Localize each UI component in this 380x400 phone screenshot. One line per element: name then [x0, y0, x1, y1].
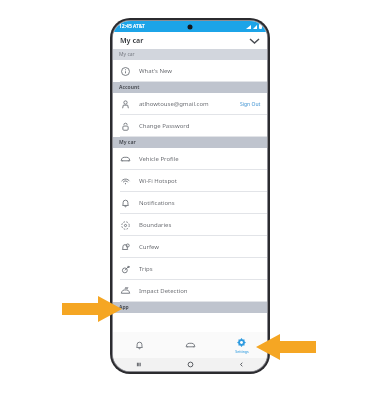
button[interactable]: atlhowtouse@gmail.com: [113, 93, 267, 115]
button[interactable]: Notifications: [113, 192, 267, 214]
staticText: Account: [119, 84, 140, 91]
staticText: My car: [119, 51, 135, 58]
button[interactable]: Notifications: [113, 332, 165, 358]
staticText: Impact Detection: [139, 287, 188, 295]
button[interactable]: Vehicle Profile: [113, 148, 267, 170]
button[interactable]: Boundaries: [113, 214, 267, 236]
button[interactable]: What's New: [113, 60, 267, 82]
staticText: My car: [120, 36, 144, 46]
button[interactable]: Wi-Fi Hotspot: [113, 170, 267, 192]
staticText: Boundaries: [139, 221, 172, 229]
staticText: 12:45 AT&T: [119, 23, 145, 30]
button[interactable]: Settings: [216, 332, 267, 358]
staticText: Change Password: [139, 122, 190, 130]
staticText: Vehicle Profile: [139, 155, 179, 163]
staticText: My car: [119, 139, 136, 146]
staticText: App: [119, 304, 129, 311]
staticText: Notifications: [139, 199, 175, 207]
staticText: What's New: [139, 67, 173, 75]
staticText: Wi-Fi Hotspot: [139, 177, 177, 185]
staticText: Settings: [235, 349, 249, 354]
staticText: Curfew: [139, 243, 160, 251]
button[interactable]: Curfew: [113, 236, 267, 258]
button[interactable]: Change Password: [113, 115, 267, 137]
staticText: Trips: [139, 265, 153, 273]
staticText: atlhowtouse@gmail.com: [139, 100, 209, 108]
button[interactable]: Sign Out: [240, 101, 261, 108]
button[interactable]: Expand vehicle selector: [247, 34, 261, 48]
button[interactable]: My car: [165, 332, 216, 358]
button[interactable]: Impact Detection: [113, 280, 267, 302]
button[interactable]: Trips: [113, 258, 267, 280]
